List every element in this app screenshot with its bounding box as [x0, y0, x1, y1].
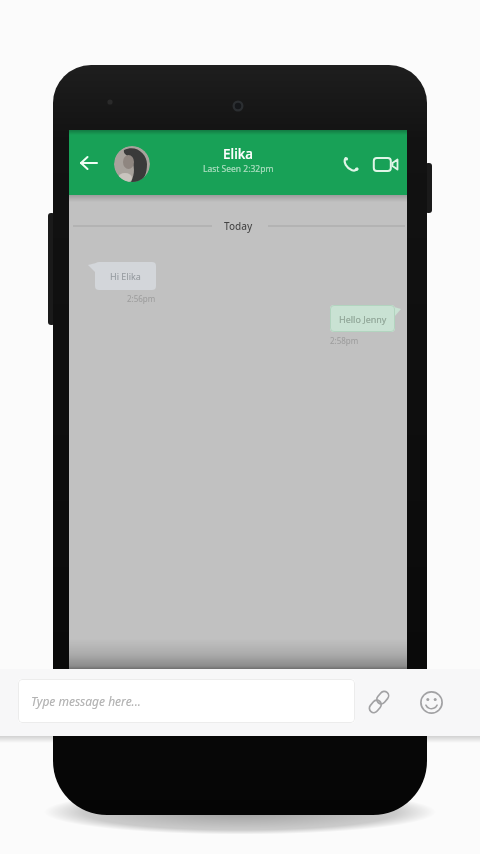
- staticText: Last Seen 2:32pm: [203, 163, 274, 175]
- staticText: Elika: [223, 145, 254, 163]
- button[interactable]: [341, 154, 361, 174]
- staticText: 2:56pm: [127, 293, 156, 304]
- staticText: Type message here...: [31, 693, 141, 709]
- staticText: Today: [224, 219, 253, 233]
- staticText: 2:58pm: [330, 335, 359, 346]
- staticText: Hello Jenny: [339, 313, 387, 325]
- button[interactable]: [114, 146, 150, 182]
- button[interactable]: Hello Jenny: [330, 305, 395, 332]
- button[interactable]: [371, 154, 401, 174]
- button[interactable]: [73, 146, 105, 180]
- staticText: Hi Elika: [110, 270, 141, 282]
- button[interactable]: [418, 689, 444, 715]
- button[interactable]: Type message here...: [18, 679, 355, 723]
- button[interactable]: Hi Elika: [95, 262, 156, 290]
- button[interactable]: [366, 688, 392, 716]
